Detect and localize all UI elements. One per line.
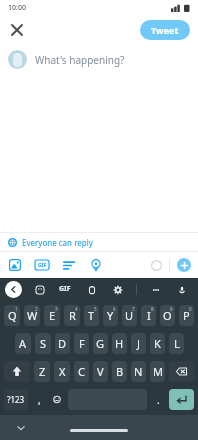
- staticText: 5: [94, 306, 97, 312]
- staticText: W: [27, 308, 38, 323]
- button[interactable]: Settings: [110, 282, 125, 297]
- staticText: 3: [55, 306, 58, 312]
- staticText: ?123: [7, 394, 25, 405]
- button[interactable]: C: [74, 361, 89, 382]
- staticText: R: [69, 308, 76, 323]
- staticText: I: [147, 308, 151, 323]
- staticText: GIF: [59, 284, 71, 294]
- staticText: A: [19, 336, 27, 351]
- button[interactable]: I: [141, 305, 156, 326]
- staticText: 1: [15, 306, 18, 312]
- button[interactable]: Add photo: [7, 257, 23, 273]
- button[interactable]: Back: [5, 281, 22, 298]
- button[interactable]: F: [74, 333, 89, 354]
- staticText: GIF: [38, 262, 47, 269]
- button[interactable]: B: [112, 361, 127, 382]
- staticText: F: [79, 336, 85, 351]
- button[interactable]: Add poll: [61, 257, 77, 273]
- staticText: B: [116, 364, 124, 379]
- button[interactable]: Q: [4, 305, 20, 326]
- staticText: L: [174, 336, 180, 351]
- button[interactable]: A: [15, 333, 31, 354]
- staticText: ,: [38, 393, 41, 407]
- button[interactable]: V: [93, 361, 108, 382]
- staticText: 4: [75, 306, 78, 312]
- staticText: Everyone can reply: [22, 237, 93, 248]
- button[interactable]: L: [169, 333, 184, 354]
- button[interactable]: Add location: [88, 257, 104, 273]
- button[interactable]: X: [54, 361, 70, 382]
- button[interactable]: Emoji: [50, 389, 64, 410]
- staticText: 8: [151, 306, 154, 312]
- staticText: 0: [189, 306, 192, 312]
- button[interactable]: S: [35, 333, 51, 354]
- staticText: O: [163, 308, 172, 323]
- staticText: E: [49, 308, 56, 323]
- button[interactable]: Close: [5, 18, 29, 42]
- staticText: N: [134, 364, 143, 379]
- staticText: 10:00: [8, 3, 26, 13]
- staticText: P: [183, 308, 190, 323]
- staticText: J: [137, 336, 141, 351]
- staticText: What's happening?: [35, 53, 125, 67]
- staticText: X: [59, 364, 66, 379]
- button[interactable]: ,: [32, 389, 46, 410]
- button[interactable]: More options: [148, 282, 163, 297]
- button[interactable]: Backspace: [169, 361, 194, 382]
- button[interactable]: O: [160, 305, 175, 326]
- staticText: 6: [113, 306, 116, 312]
- button[interactable]: Add another tweet: [177, 258, 191, 272]
- button[interactable]: M: [150, 361, 165, 382]
- button[interactable]: Shift: [4, 361, 30, 382]
- staticText: Tweet: [151, 24, 179, 36]
- staticText: S: [40, 336, 47, 351]
- staticText: D: [58, 336, 67, 351]
- button[interactable]: Everyone can reply: [0, 233, 198, 251]
- button[interactable]: Voice input: [174, 282, 189, 297]
- button[interactable]: Hide keyboard: [14, 421, 28, 435]
- button[interactable]: J: [131, 333, 146, 354]
- button[interactable]: H: [112, 333, 127, 354]
- staticText: 7: [132, 306, 135, 312]
- button[interactable]: Y: [103, 305, 118, 326]
- button[interactable]: Add GIF: [34, 257, 50, 273]
- staticText: 9: [170, 306, 173, 312]
- button[interactable]: K: [150, 333, 165, 354]
- button[interactable]: P: [179, 305, 194, 326]
- staticText: V: [97, 364, 104, 379]
- button[interactable]: .: [151, 389, 165, 410]
- staticText: K: [154, 336, 161, 351]
- staticText: M: [153, 364, 163, 379]
- staticText: Y: [107, 308, 114, 323]
- staticText: G: [96, 336, 105, 351]
- staticText: .: [157, 393, 160, 407]
- button[interactable]: ?123: [4, 389, 28, 410]
- button[interactable]: GIF: [57, 282, 73, 296]
- staticText: 2: [35, 306, 38, 312]
- button[interactable]: E: [44, 305, 60, 326]
- button[interactable]: Z: [34, 361, 50, 382]
- button[interactable]: Enter: [169, 389, 194, 410]
- button[interactable]: T: [84, 305, 99, 326]
- staticText: H: [115, 336, 124, 351]
- staticText: T: [88, 308, 95, 323]
- staticText: U: [125, 308, 134, 323]
- staticText: Z: [39, 364, 46, 379]
- staticText: Q: [8, 308, 17, 323]
- button[interactable]: U: [122, 305, 137, 326]
- button[interactable]: D: [55, 333, 70, 354]
- button[interactable]: W: [24, 305, 40, 326]
- button[interactable]: Tweet: [140, 20, 190, 40]
- button[interactable]: G: [93, 333, 108, 354]
- button[interactable]: Stickers: [32, 282, 47, 297]
- button[interactable]: N: [131, 361, 146, 382]
- staticText: C: [78, 364, 85, 379]
- button[interactable]: R: [64, 305, 80, 326]
- button[interactable]: Clipboard: [84, 282, 99, 297]
